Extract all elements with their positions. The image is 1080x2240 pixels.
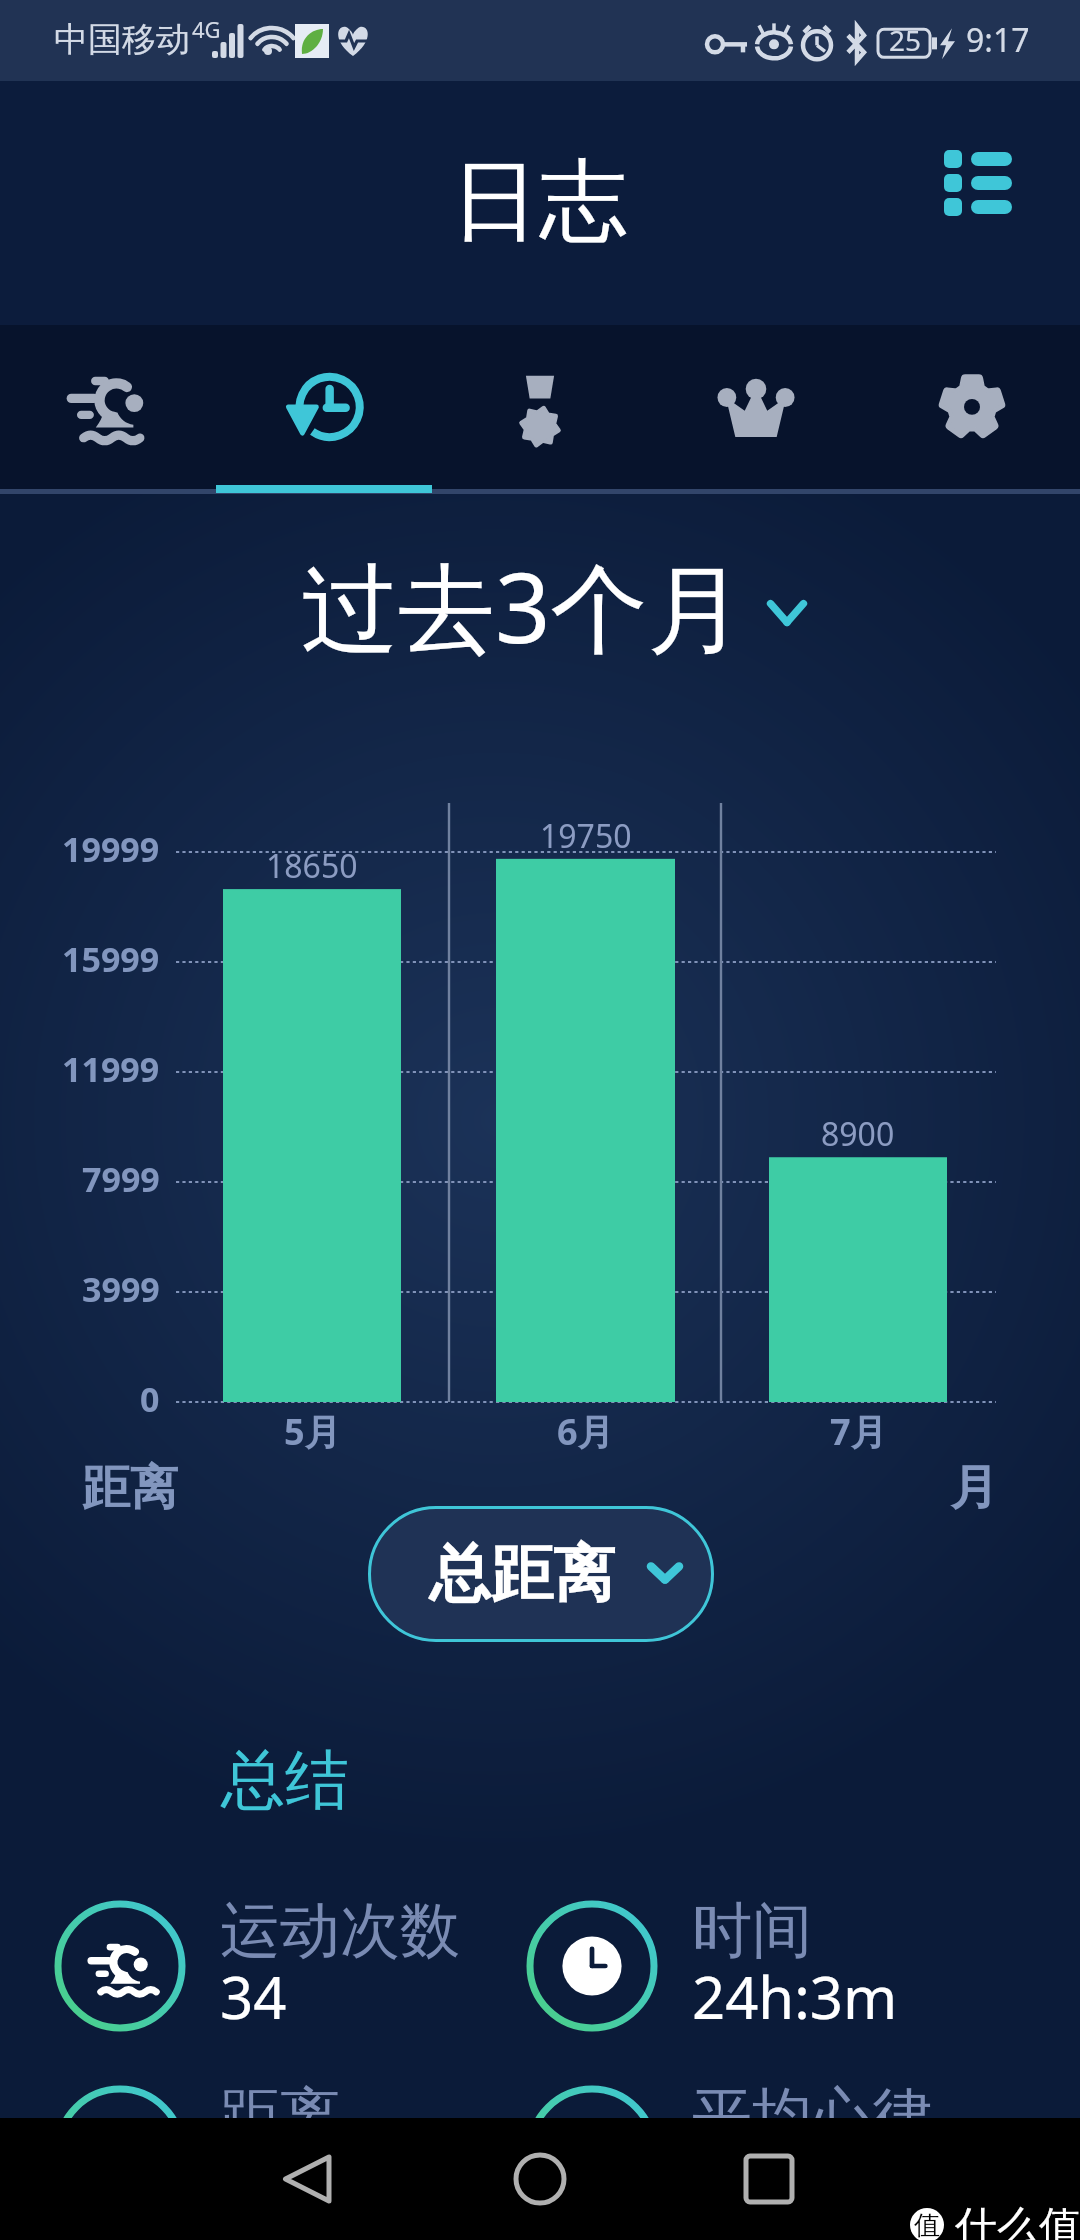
button[interactable]: 运动次数 xyxy=(54,1900,426,2055)
staticText: 19750 xyxy=(540,814,632,858)
staticText: 过去3个月 xyxy=(301,539,745,671)
staticText: 运动次数 xyxy=(220,1893,460,1969)
staticText: 6月 xyxy=(557,1407,614,1456)
staticText: 24h:3m xyxy=(692,1957,898,2036)
button[interactable]: 过去3个月 xyxy=(301,539,785,671)
button[interactable]: History xyxy=(216,325,432,489)
staticText: 0 xyxy=(140,1376,160,1422)
staticText: 值 xyxy=(914,2209,940,2240)
staticText: 9:17 xyxy=(966,18,1030,62)
button[interactable]: Leaderboard xyxy=(648,325,864,489)
button[interactable]: 时间 xyxy=(526,1900,864,2055)
button[interactable]: List view xyxy=(922,127,1034,239)
staticText: 7月 xyxy=(830,1407,887,1456)
button[interactable]: 平均心律 xyxy=(526,2085,898,2240)
staticText: 18650 xyxy=(266,844,358,888)
staticText: 总结 xyxy=(221,1740,349,1821)
button[interactable]: Medals xyxy=(432,325,648,489)
staticText: 中国移动 xyxy=(54,18,190,61)
button[interactable]: Home xyxy=(484,2118,596,2240)
staticText: 平均心律 xyxy=(692,2078,932,2154)
staticText: 3999 xyxy=(82,1266,160,1312)
staticText: 8900 xyxy=(821,1112,895,1156)
button[interactable]: Back xyxy=(252,2118,364,2240)
staticText: 15999 xyxy=(62,936,160,982)
staticText: 距离 xyxy=(82,1458,178,1518)
button[interactable]: Swim workouts xyxy=(0,325,216,489)
staticText: 时间 xyxy=(692,1893,812,1969)
staticText: 总距离 xyxy=(429,1535,615,1613)
staticText: 34 xyxy=(220,1957,287,2036)
staticText: 4G xyxy=(192,14,221,44)
button[interactable]: Settings xyxy=(864,325,1080,489)
button[interactable]: Recent apps xyxy=(713,2118,825,2240)
staticText: 日志 xyxy=(451,146,627,257)
button[interactable]: 距离 xyxy=(54,2085,306,2240)
staticText: 什么值得买 xyxy=(944,2196,1080,2240)
staticText: 11999 xyxy=(62,1046,160,1092)
staticText: 7999 xyxy=(82,1156,160,1202)
staticText: 月 xyxy=(950,1458,998,1518)
staticText: 5月 xyxy=(284,1407,341,1456)
button[interactable]: 总距离 xyxy=(368,1506,714,1642)
staticText: 距离 xyxy=(220,2078,340,2154)
staticText: 19999 xyxy=(62,826,160,872)
staticText: 25 xyxy=(889,21,922,59)
